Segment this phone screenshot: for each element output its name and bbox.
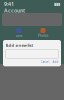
button[interactable]: Add: [52, 60, 58, 64]
staticText: ▮▮▮: [54, 2, 60, 6]
staticText: Account: [4, 7, 25, 14]
staticText: Add: [52, 60, 58, 64]
staticText: Docs: [16, 34, 22, 37]
staticText: Photos: [38, 34, 48, 37]
button[interactable]: Cancel: [40, 60, 49, 64]
staticText: Add a new list: [5, 42, 33, 48]
staticText: 9:41: [4, 0, 14, 8]
staticText: Cancel: [40, 60, 49, 64]
